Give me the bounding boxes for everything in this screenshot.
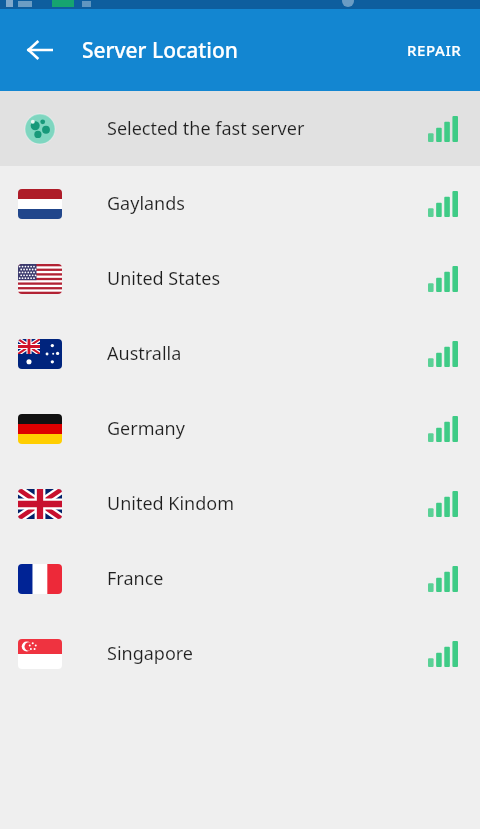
staticText: REPAIR (407, 40, 462, 60)
staticText: United Kindom (107, 491, 235, 516)
button[interactable]: REPAIR (395, 30, 474, 70)
button[interactable]: United Kindom (0, 466, 480, 541)
staticText: Singapore (107, 641, 194, 666)
staticText: France (107, 566, 164, 591)
staticText: Australla (107, 341, 182, 366)
staticText: United States (107, 266, 221, 291)
button[interactable]: Back (14, 24, 66, 76)
staticText: Selected the fast server (107, 116, 305, 141)
button[interactable]: Singapore (0, 616, 480, 691)
button[interactable]: United States (0, 241, 480, 316)
staticText: Server Location (82, 36, 239, 65)
button[interactable]: France (0, 541, 480, 616)
staticText: Gaylands (107, 191, 185, 216)
button[interactable]: Selected the fast server (0, 91, 480, 166)
button[interactable]: Germany (0, 391, 480, 466)
button[interactable]: Gaylands (0, 166, 480, 241)
staticText: Germany (107, 416, 185, 441)
button[interactable]: Australla (0, 316, 480, 391)
